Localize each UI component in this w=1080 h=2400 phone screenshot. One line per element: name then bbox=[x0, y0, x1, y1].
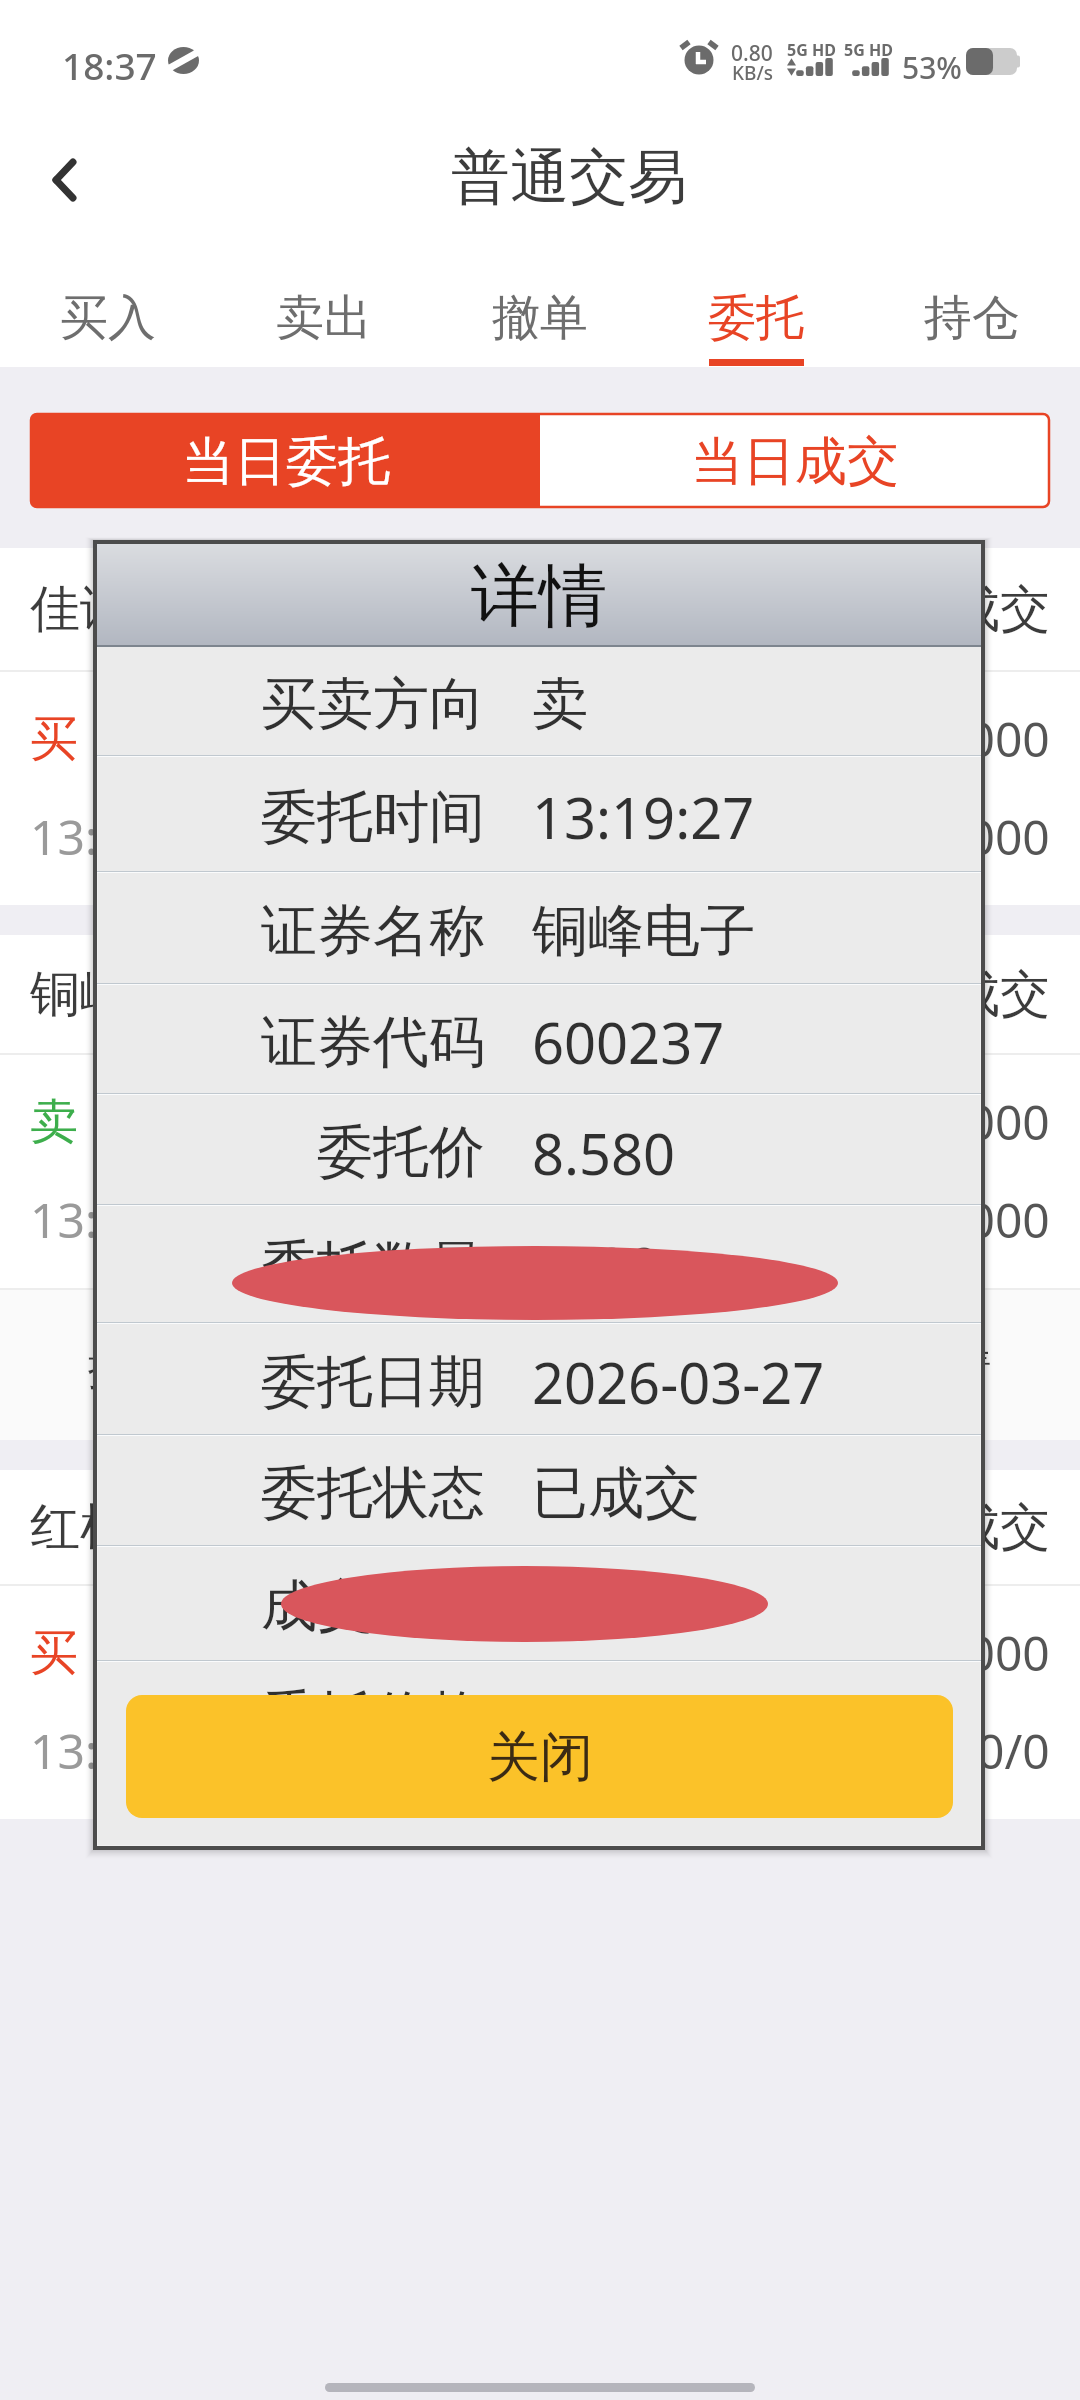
staticText: 已成交 bbox=[532, 1458, 700, 1529]
button[interactable]: 佳讯飞鸿 bbox=[0, 548, 1080, 905]
staticText: 委托价格 bbox=[97, 1682, 485, 1753]
button[interactable]: 铜峰电子 bbox=[0, 935, 1080, 1440]
staticText: 证券名称 bbox=[97, 896, 485, 967]
staticText: 买卖方向 bbox=[97, 669, 485, 740]
staticText: 2026-03-27 bbox=[532, 1344, 825, 1420]
staticText: 1000 bbox=[940, 1187, 1050, 1252]
staticText: KB/s bbox=[732, 60, 773, 86]
staticText: 持仓 bbox=[924, 288, 1020, 348]
button[interactable]: 买入 bbox=[0, 246, 216, 367]
staticText: 红棉股份 bbox=[30, 1496, 230, 1559]
staticText: 关闭 bbox=[487, 1724, 593, 1791]
staticText: 18:37 bbox=[62, 40, 157, 90]
button[interactable]: 卖出 bbox=[216, 246, 432, 367]
staticText: 0/0 bbox=[977, 1718, 1050, 1783]
staticText: 5G HD bbox=[844, 39, 893, 61]
staticText: 委托状态 bbox=[97, 1458, 485, 1529]
staticText: 委托价 bbox=[97, 1117, 485, 1188]
staticText: 买 bbox=[30, 709, 78, 769]
staticText: 已成交 bbox=[900, 1496, 1050, 1559]
staticText: 佳讯飞鸿 bbox=[30, 578, 230, 641]
staticText: 13:19:27 bbox=[30, 1187, 221, 1252]
staticText: 委托日期 bbox=[97, 1347, 485, 1418]
staticText: 1000 bbox=[940, 804, 1050, 869]
staticText: 铜峰电子 bbox=[30, 963, 230, 1026]
staticText: 委托时间 bbox=[97, 782, 485, 853]
staticText: 铜峰电子 bbox=[532, 896, 756, 967]
staticText: 53% bbox=[902, 47, 962, 88]
staticText: 买入 bbox=[60, 288, 156, 348]
staticText: 1000 bbox=[940, 1620, 1050, 1685]
staticText: 13:05:02 bbox=[30, 1718, 221, 1783]
staticText: 0.80 bbox=[731, 39, 773, 68]
button[interactable]: 当日成交 bbox=[540, 414, 1049, 507]
button[interactable]: 详情 bbox=[903, 1341, 991, 1396]
staticText: 已成交 bbox=[900, 963, 1050, 1026]
staticText: 8.580 bbox=[532, 1682, 676, 1758]
staticText: 1000 bbox=[532, 1229, 661, 1305]
button[interactable]: 红棉股份 bbox=[0, 1470, 1080, 1819]
button[interactable]: 当日委托 bbox=[31, 414, 540, 507]
staticText: 详情 bbox=[471, 554, 607, 640]
staticText: 已成交 bbox=[900, 578, 1050, 641]
staticText: 5G HD bbox=[787, 39, 836, 61]
staticText: 1000 bbox=[940, 706, 1050, 771]
button[interactable]: 委托 bbox=[648, 246, 864, 367]
staticText: 成交数量 bbox=[97, 1571, 485, 1642]
staticText: 13:24:35 bbox=[30, 804, 221, 869]
staticText: 卖出 bbox=[276, 288, 372, 348]
staticText: 委托 bbox=[708, 288, 804, 348]
staticText: 卖 bbox=[532, 669, 588, 740]
button[interactable]: 关闭 bbox=[126, 1695, 953, 1818]
staticText: 委托数量 bbox=[97, 1232, 485, 1303]
staticText: 普通交易 bbox=[451, 140, 687, 214]
button[interactable]: Back bbox=[13, 126, 117, 230]
staticText: 600237 bbox=[532, 1004, 725, 1080]
staticText: 1000 bbox=[940, 1089, 1050, 1154]
button[interactable]: 撤单 bbox=[432, 246, 648, 367]
staticText: 13:19:27 bbox=[532, 779, 755, 855]
staticText: 当日成交 bbox=[691, 429, 899, 495]
staticText: 卖 bbox=[30, 1092, 78, 1152]
staticText: 撤单 bbox=[492, 288, 588, 348]
staticText: 1000 bbox=[532, 1569, 661, 1645]
staticText: 买 bbox=[30, 1623, 78, 1683]
staticText: 证券代码 bbox=[97, 1007, 485, 1078]
staticText: 8.580 bbox=[532, 1115, 676, 1191]
button[interactable]: 持仓 bbox=[864, 246, 1080, 367]
button[interactable]: 撤单 bbox=[88, 1341, 176, 1396]
staticText: 当日委托 bbox=[182, 429, 390, 495]
